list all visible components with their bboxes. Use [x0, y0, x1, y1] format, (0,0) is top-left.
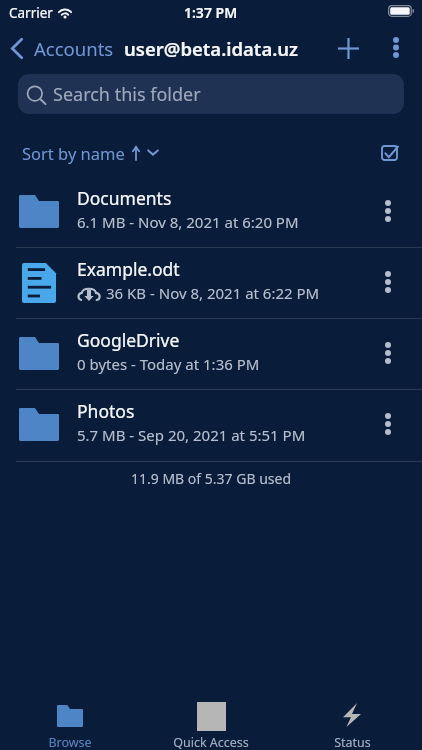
button[interactable]: Select items	[371, 136, 407, 170]
staticText: Documents	[77, 186, 172, 210]
button[interactable]: Item options	[370, 193, 406, 229]
button[interactable]: Example.odt	[0, 247, 422, 318]
button[interactable]: Add	[330, 30, 366, 66]
staticText: 1:37 PM	[184, 3, 238, 22]
staticText: Sort by name	[22, 142, 125, 164]
button[interactable]: Search this folder	[18, 74, 404, 114]
button[interactable]: Item options	[370, 335, 406, 371]
staticText: Carrier	[9, 4, 53, 22]
staticText: user@beta.idata.uz	[124, 36, 299, 61]
button[interactable]: Item options	[370, 264, 406, 300]
button[interactable]: Sort by name	[0, 137, 169, 169]
staticText: 6.1 MB - Nov 8, 2021 at 6:20 PM	[77, 212, 299, 232]
button[interactable]: Documents	[0, 176, 422, 247]
staticText: Search this folder	[53, 82, 201, 107]
staticText: GoogleDrive	[77, 328, 180, 352]
button[interactable]: Photos	[0, 389, 422, 460]
staticText: Photos	[77, 399, 135, 423]
staticText: 5.7 MB - Sep 20, 2021 at 5:51 PM	[77, 425, 306, 445]
button[interactable]: Browse	[10, 694, 130, 750]
staticText: Quick Access	[173, 734, 249, 750]
staticText: Example.odt	[77, 257, 180, 281]
button[interactable]: Quick Access	[151, 694, 271, 750]
button[interactable]: Item options	[370, 406, 406, 442]
button[interactable]: GoogleDrive	[0, 318, 422, 389]
staticText: Browse	[48, 734, 92, 750]
staticText: Status	[334, 734, 371, 750]
button[interactable]: Accounts	[0, 32, 122, 65]
button[interactable]: Status	[292, 694, 412, 750]
staticText: 11.9 MB of 5.37 GB used	[131, 469, 291, 488]
button[interactable]: More options	[378, 29, 414, 65]
staticText: 36 KB - Nov 8, 2021 at 6:22 PM	[106, 283, 320, 303]
staticText: Accounts	[34, 36, 114, 61]
staticText: 0 bytes - Today at 1:36 PM	[77, 354, 260, 374]
